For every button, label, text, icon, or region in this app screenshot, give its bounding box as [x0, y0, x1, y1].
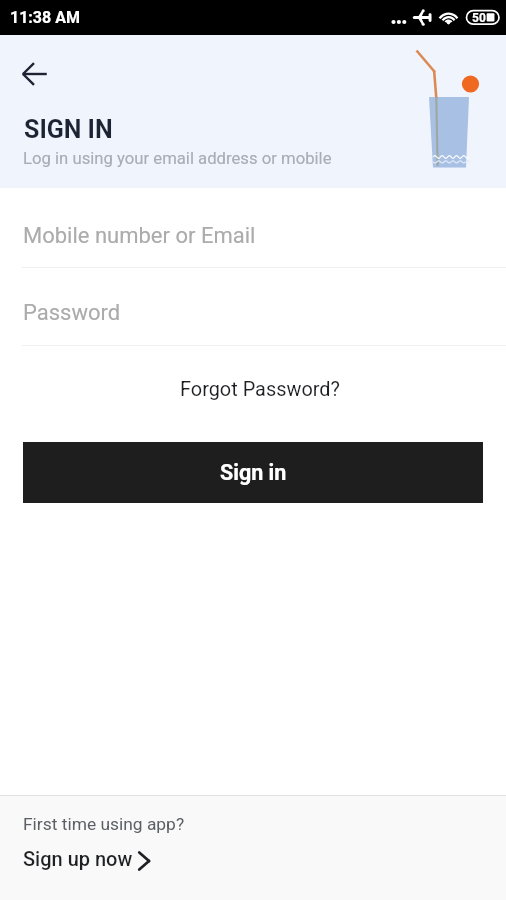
button[interactable]: Mobile number or Email	[0, 213, 506, 259]
staticText: 50	[472, 11, 486, 25]
staticText: Sign in	[220, 460, 287, 485]
staticText: Sign up now	[23, 847, 133, 870]
button[interactable]: Back	[11, 51, 57, 97]
staticText: Log in using your email address or mobil…	[23, 149, 332, 169]
staticText: Mobile number or Email	[23, 223, 256, 249]
button[interactable]: Sign up now	[23, 845, 151, 872]
staticText: 11:38 AM	[10, 8, 80, 27]
staticText: Password	[23, 300, 121, 326]
button[interactable]: Sign in	[23, 442, 483, 503]
button[interactable]: Password	[0, 290, 506, 336]
staticText: First time using app?	[23, 814, 185, 834]
button[interactable]: Forgot Password?	[164, 370, 356, 409]
staticText: SIGN IN	[24, 115, 113, 144]
staticText: Forgot Password?	[180, 378, 340, 401]
